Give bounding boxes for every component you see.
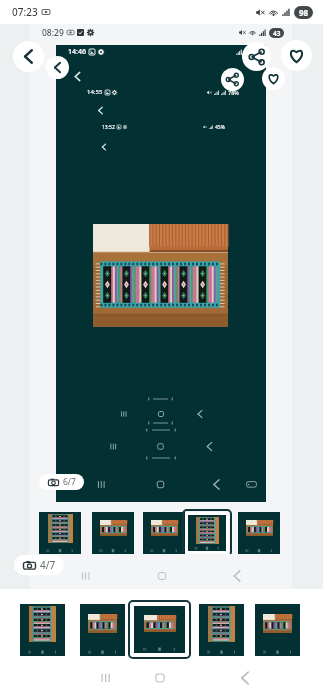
button[interactable] xyxy=(143,512,185,554)
button[interactable]: Screenshot xyxy=(243,476,259,492)
button[interactable]: Back xyxy=(46,56,69,79)
button[interactable]: Back xyxy=(228,567,245,584)
staticText: 08:29 xyxy=(42,27,64,39)
button[interactable]: Recents xyxy=(118,408,130,420)
button[interactable]: Home xyxy=(152,476,168,492)
button[interactable]: Favorite xyxy=(262,67,285,90)
button[interactable]: Recents xyxy=(77,567,94,584)
staticText: 4/7 xyxy=(40,558,56,572)
button[interactable]: Home xyxy=(150,668,170,688)
button[interactable]: Home xyxy=(153,439,167,453)
button[interactable]: Back xyxy=(97,140,111,154)
button[interactable]: Recents xyxy=(93,476,109,492)
staticText: 6/7 xyxy=(63,476,76,488)
staticText: 14:46 xyxy=(68,47,86,57)
button[interactable] xyxy=(134,606,185,653)
button[interactable]: Back xyxy=(194,408,206,420)
staticText: 14:55 xyxy=(87,88,103,96)
staticText: 78% xyxy=(228,89,239,96)
button[interactable]: Back xyxy=(13,41,44,72)
button[interactable] xyxy=(92,512,134,554)
button[interactable]: Home xyxy=(155,408,167,420)
button[interactable]: Share xyxy=(242,42,271,71)
button[interactable]: Back xyxy=(92,102,108,118)
button[interactable] xyxy=(255,604,300,656)
button[interactable]: Back xyxy=(208,476,224,492)
button[interactable]: Home xyxy=(153,567,170,584)
staticText: 43 xyxy=(273,29,281,38)
button[interactable] xyxy=(80,604,125,656)
button[interactable]: Recents xyxy=(96,668,116,688)
staticText: 13:52 xyxy=(102,124,115,131)
button[interactable] xyxy=(238,512,280,554)
button[interactable]: Back xyxy=(68,67,86,85)
button[interactable]: 6/7 xyxy=(39,474,84,490)
button[interactable]: Favorite xyxy=(281,40,312,71)
button[interactable] xyxy=(188,515,226,551)
button[interactable]: Back xyxy=(202,439,216,453)
staticText: 07:23 xyxy=(12,5,38,19)
button[interactable] xyxy=(20,604,65,656)
button[interactable]: Back xyxy=(235,668,255,688)
staticText: 45% xyxy=(215,124,225,131)
staticText: 98 xyxy=(299,7,309,18)
button[interactable] xyxy=(39,512,81,554)
button[interactable]: Recents xyxy=(106,439,120,453)
button[interactable] xyxy=(199,604,244,656)
button[interactable]: 4/7 xyxy=(14,555,64,575)
button[interactable]: Share xyxy=(221,68,244,91)
